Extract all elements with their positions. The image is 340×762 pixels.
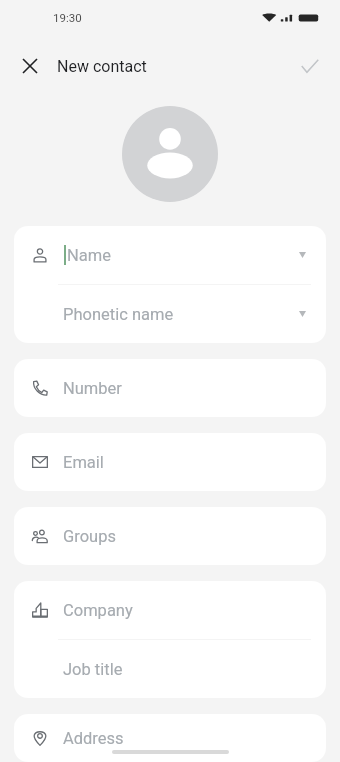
staticText: Job title <box>63 660 123 679</box>
button[interactable]: Add photo <box>122 106 218 202</box>
staticText: Phonetic name <box>63 305 174 324</box>
button[interactable]: Job title <box>14 640 326 698</box>
button[interactable]: Close <box>14 50 46 82</box>
button[interactable]: Number <box>14 359 326 417</box>
button[interactable]: Phonetic name <box>14 285 326 343</box>
staticText: 19:30 <box>53 11 82 24</box>
button[interactable]: Save <box>294 50 326 82</box>
staticText: Number <box>63 379 122 398</box>
staticText: New contact <box>57 57 147 76</box>
button[interactable]: Email <box>14 433 326 491</box>
staticText: Name <box>67 246 111 265</box>
staticText: Address <box>63 729 124 748</box>
button[interactable]: Name <box>14 226 326 284</box>
staticText: Company <box>63 601 133 620</box>
button[interactable]: Company <box>14 581 326 639</box>
button[interactable]: Address <box>14 714 326 762</box>
staticText: Groups <box>63 527 116 546</box>
button[interactable]: Groups <box>14 507 326 565</box>
staticText: Email <box>63 453 104 472</box>
